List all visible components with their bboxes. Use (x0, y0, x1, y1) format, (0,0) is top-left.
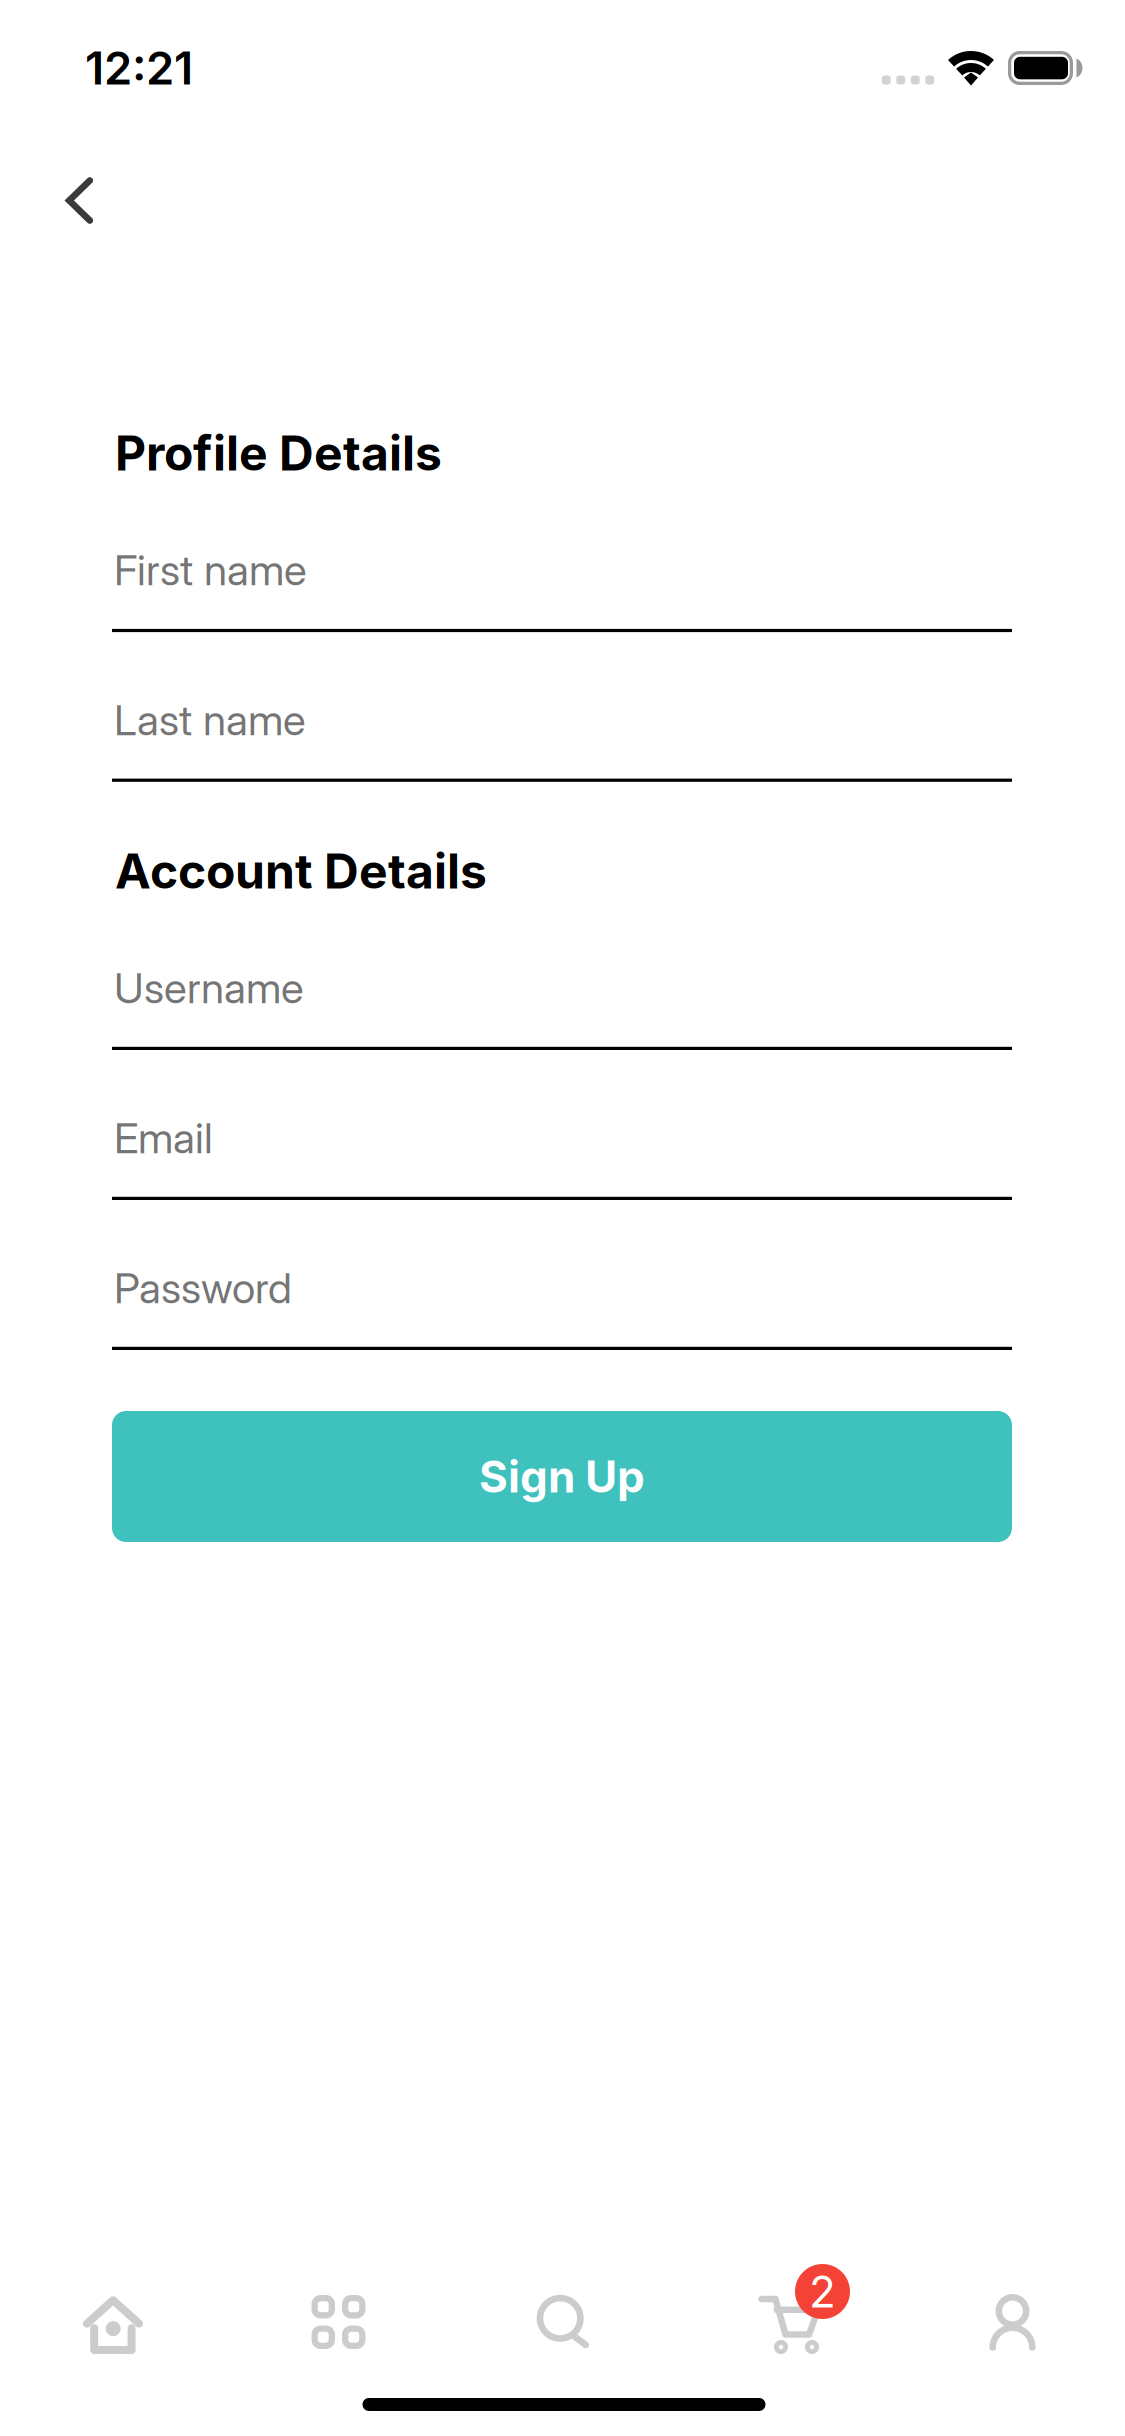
button[interactable]: Search (450, 2260, 675, 2390)
button[interactable]: Sign Up (112, 1411, 1012, 1542)
button[interactable]: Profile (900, 2260, 1125, 2390)
staticText: Password (114, 1262, 292, 1313)
staticText: Profile Details (115, 424, 442, 482)
staticText: First name (114, 544, 307, 595)
staticText: Last name (114, 694, 306, 745)
staticText: Username (114, 962, 304, 1013)
staticText: Email (114, 1112, 213, 1163)
staticText: 12:21 (85, 41, 193, 95)
button[interactable]: Back (31, 152, 127, 248)
button[interactable]: Home (0, 2260, 225, 2390)
staticText: Account Details (115, 842, 487, 900)
staticText: 2 (809, 2265, 836, 2318)
staticText: Sign Up (479, 1450, 645, 1503)
button[interactable]: Categories (225, 2260, 450, 2390)
button[interactable]: Cart, 2 items (675, 2260, 900, 2390)
